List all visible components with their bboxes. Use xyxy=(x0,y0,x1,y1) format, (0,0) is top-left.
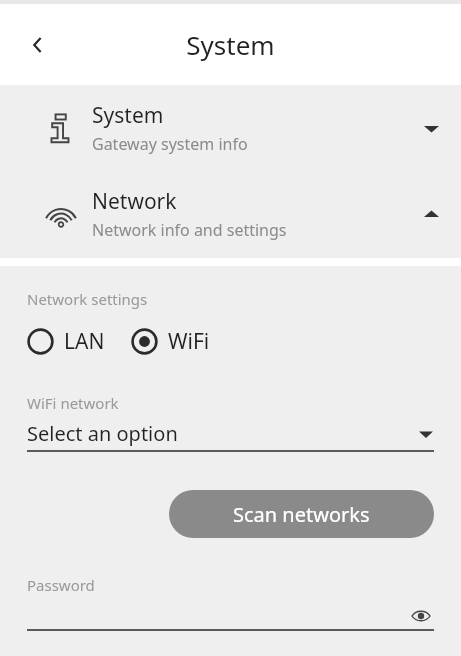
staticText: Gateway system info xyxy=(92,133,248,155)
staticText: WiFi xyxy=(168,327,210,356)
button[interactable]: Show password xyxy=(408,603,434,629)
button[interactable]: Select an option xyxy=(27,417,434,450)
staticText: Password xyxy=(27,575,95,595)
button[interactable]: Scan networks xyxy=(169,490,434,538)
button[interactable]: System xyxy=(0,85,461,171)
staticText: Network xyxy=(92,187,177,216)
button[interactable]: Back xyxy=(16,23,60,67)
staticText: Network settings xyxy=(27,289,148,309)
staticText: WiFi network xyxy=(27,393,119,413)
staticText: System xyxy=(186,27,275,62)
staticText: LAN xyxy=(64,327,105,356)
button[interactable]: LAN xyxy=(27,323,105,360)
staticText: System xyxy=(92,101,164,130)
staticText: Select an option xyxy=(27,420,178,447)
staticText: Scan networks xyxy=(233,501,370,528)
button[interactable]: WiFi xyxy=(131,323,210,360)
button[interactable]: Network xyxy=(0,171,461,257)
staticText: Network info and settings xyxy=(92,219,287,241)
